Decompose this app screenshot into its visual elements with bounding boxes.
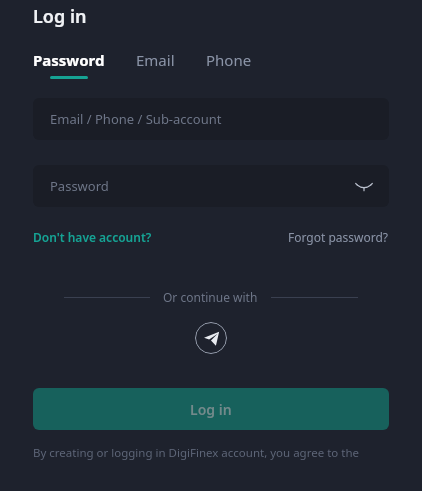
staticText: Log in — [33, 4, 87, 29]
staticText: Don't have account? — [33, 229, 152, 245]
button[interactable]: Password — [33, 50, 105, 79]
staticText: Or continue with — [163, 289, 258, 305]
staticText: By creating or logging in DigiFinex acco… — [33, 445, 389, 461]
button[interactable]: Continue with Telegram — [195, 322, 227, 354]
button[interactable]: Don't have account? — [33, 229, 152, 245]
staticText: Password — [33, 50, 105, 70]
staticText: Password — [50, 177, 109, 195]
button[interactable]: Phone — [206, 50, 252, 79]
button[interactable]: Forgot password? — [288, 229, 389, 245]
button[interactable]: Email — [136, 50, 175, 79]
button[interactable]: Email / Phone / Sub-account — [33, 98, 389, 140]
staticText: Email / Phone / Sub-account — [50, 110, 222, 128]
staticText: Email — [136, 50, 175, 70]
staticText: Phone — [206, 50, 252, 70]
staticText: Log in — [190, 400, 232, 419]
button[interactable]: Show password — [352, 174, 376, 198]
staticText: Forgot password? — [288, 229, 389, 245]
button[interactable]: Log in — [33, 388, 389, 430]
button[interactable]: Password — [33, 165, 389, 207]
